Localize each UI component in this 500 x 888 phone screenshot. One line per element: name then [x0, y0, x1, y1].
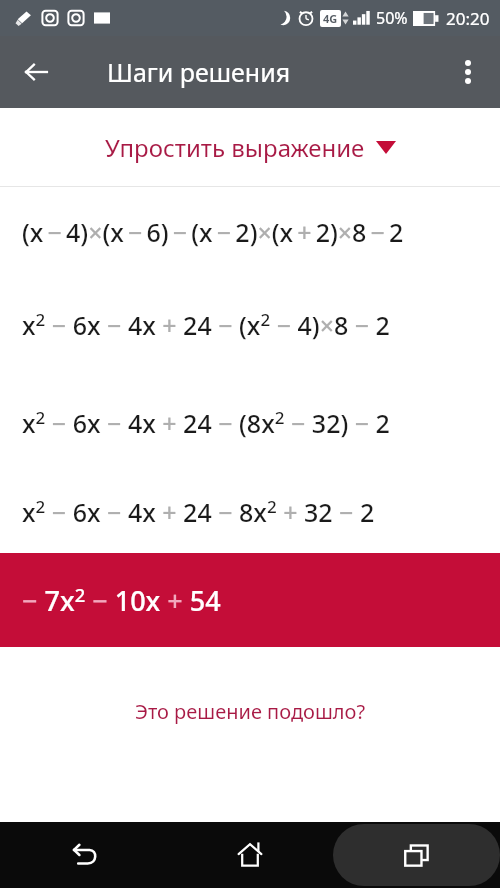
button[interactable]: Назад	[0, 822, 166, 888]
button[interactable]: Ещё	[444, 48, 492, 96]
button[interactable]: Упростить выражение	[0, 108, 500, 186]
staticText: x2 − 6x − 4x + 24 − (8x2 − 32) − 2	[22, 406, 390, 441]
staticText: 4G	[323, 11, 338, 26]
staticText: Шаги решения	[107, 55, 291, 89]
staticText: (x − 4)×(x − 6) − (x − 2)×(x + 2)×8 − 2	[22, 215, 404, 249]
staticText: Это решение подошло?	[135, 698, 366, 725]
staticText: x2 − 6x − 4x + 24 − (x2 − 4)×8 − 2	[22, 308, 390, 343]
staticText: x2 − 6x − 4x + 24 − 8x2 + 32 − 2	[22, 495, 375, 530]
button[interactable]: Назад	[12, 48, 60, 96]
staticText: Упростить выражение	[105, 131, 365, 164]
button[interactable]: Обзор приложений	[333, 824, 500, 886]
button[interactable]: Главный экран	[166, 822, 333, 888]
staticText: 20:20	[446, 7, 490, 30]
button[interactable]: Это решение подошло?	[127, 690, 374, 733]
staticText: − 7x2 − 10x + 54	[22, 582, 221, 619]
staticText: 50%	[376, 7, 408, 29]
